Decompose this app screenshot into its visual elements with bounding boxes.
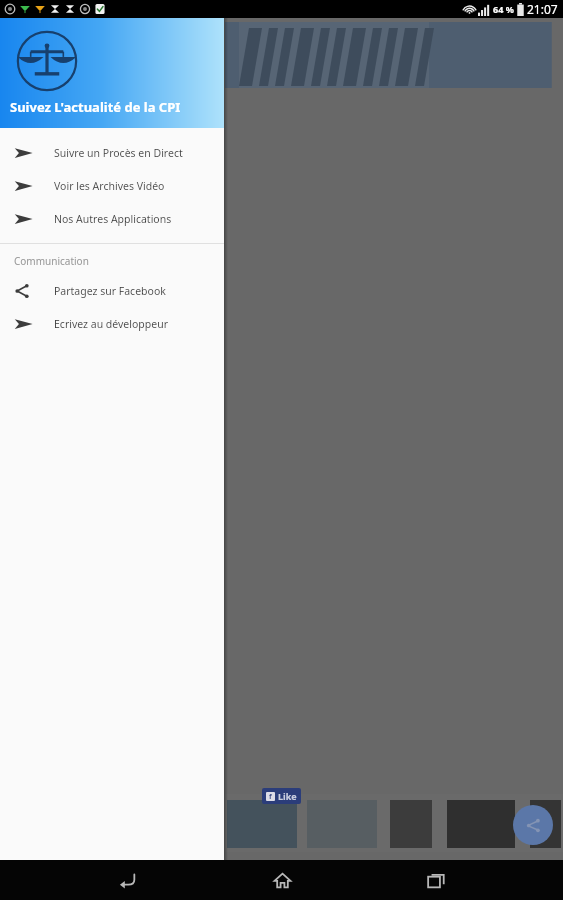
- staticText: 21:07: [527, 1, 558, 17]
- button[interactable]: Share: [513, 805, 553, 845]
- staticText: 64 %: [493, 3, 514, 15]
- staticText: f: [269, 792, 272, 801]
- button[interactable]: Nos Autres Applications: [0, 202, 224, 235]
- staticText: Communication: [14, 254, 89, 268]
- button[interactable]: Home: [254, 860, 310, 900]
- staticText: Suivre un Procès en Direct: [54, 146, 183, 160]
- button[interactable]: Like on Facebook: [262, 788, 301, 804]
- button[interactable]: Partagez sur Facebook: [0, 274, 224, 307]
- staticText: Like: [278, 790, 297, 802]
- button[interactable]: Recent apps: [408, 860, 464, 900]
- button[interactable]: Ecrivez au développeur: [0, 307, 224, 340]
- button[interactable]: Back: [99, 860, 155, 900]
- staticText: Ecrivez au développeur: [54, 317, 168, 331]
- button[interactable]: Voir les Archives Vidéo: [0, 169, 224, 202]
- staticText: Voir les Archives Vidéo: [54, 179, 165, 193]
- staticText: Suivez L'actualité de la CPI: [10, 98, 181, 116]
- staticText: Partagez sur Facebook: [54, 284, 166, 298]
- button[interactable]: Suivre un Procès en Direct: [0, 136, 224, 169]
- staticText: Nos Autres Applications: [54, 212, 172, 226]
